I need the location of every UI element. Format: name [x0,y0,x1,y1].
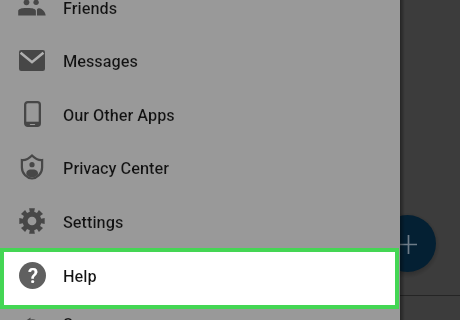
button[interactable]: Privacy Center [0,140,400,194]
button[interactable]: Our Other Apps [0,87,400,141]
staticText: Privacy Center [63,159,169,178]
button[interactable]: Add [379,215,436,272]
button[interactable]: Friends [0,0,400,34]
staticText: Friends [63,0,118,18]
staticText: Messages [63,52,138,71]
staticText: ? [28,264,38,288]
staticText: Settings [63,213,124,232]
button[interactable]: Sync [0,296,400,320]
button[interactable]: Messages [0,33,400,87]
staticText: Help [63,267,97,286]
staticText: ? [28,264,38,288]
staticText: Help [63,267,97,286]
button[interactable]: ? [4,252,395,305]
button[interactable]: Settings [0,194,400,248]
button[interactable]: ? [0,248,400,302]
staticText: Our Other Apps [63,106,175,125]
staticText: Sync [63,315,99,320]
